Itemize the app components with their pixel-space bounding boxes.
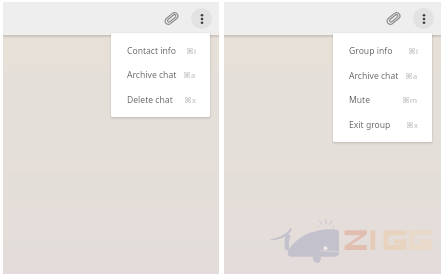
staticText: ⌘: [408, 47, 416, 56]
staticText: Archive chat: [127, 69, 177, 81]
button[interactable]: More options: [191, 8, 212, 29]
staticText: Contact info: [127, 45, 177, 57]
staticText: ⌘: [184, 96, 192, 105]
staticText: ⌘: [186, 47, 194, 56]
staticText: ⌘: [405, 72, 413, 81]
button[interactable]: Delete chat: [111, 87, 210, 112]
button[interactable]: Exit group: [333, 112, 432, 137]
staticText: m: [410, 95, 418, 105]
button[interactable]: Contact info: [111, 39, 210, 63]
button[interactable]: Group info: [333, 39, 432, 63]
staticText: a: [413, 71, 418, 81]
button[interactable]: Attach file: [381, 6, 405, 30]
button[interactable]: Mute: [333, 88, 432, 112]
button[interactable]: Archive chat: [333, 63, 432, 88]
staticText: Delete chat: [127, 94, 173, 106]
staticText: i: [416, 46, 418, 56]
staticText: x: [414, 120, 418, 130]
staticText: Mute: [349, 94, 371, 106]
button[interactable]: Attach file: [159, 6, 183, 30]
staticText: ⌘: [183, 71, 191, 80]
staticText: Archive chat: [349, 70, 399, 82]
staticText: x: [192, 95, 196, 105]
staticText: ⌘: [402, 96, 410, 105]
staticText: ⌘: [406, 121, 414, 130]
button[interactable]: Archive chat: [111, 63, 210, 87]
button[interactable]: More options: [413, 8, 434, 29]
staticText: a: [191, 70, 196, 80]
staticText: Exit group: [349, 119, 391, 131]
staticText: Group info: [349, 45, 393, 57]
staticText: i: [194, 46, 196, 56]
